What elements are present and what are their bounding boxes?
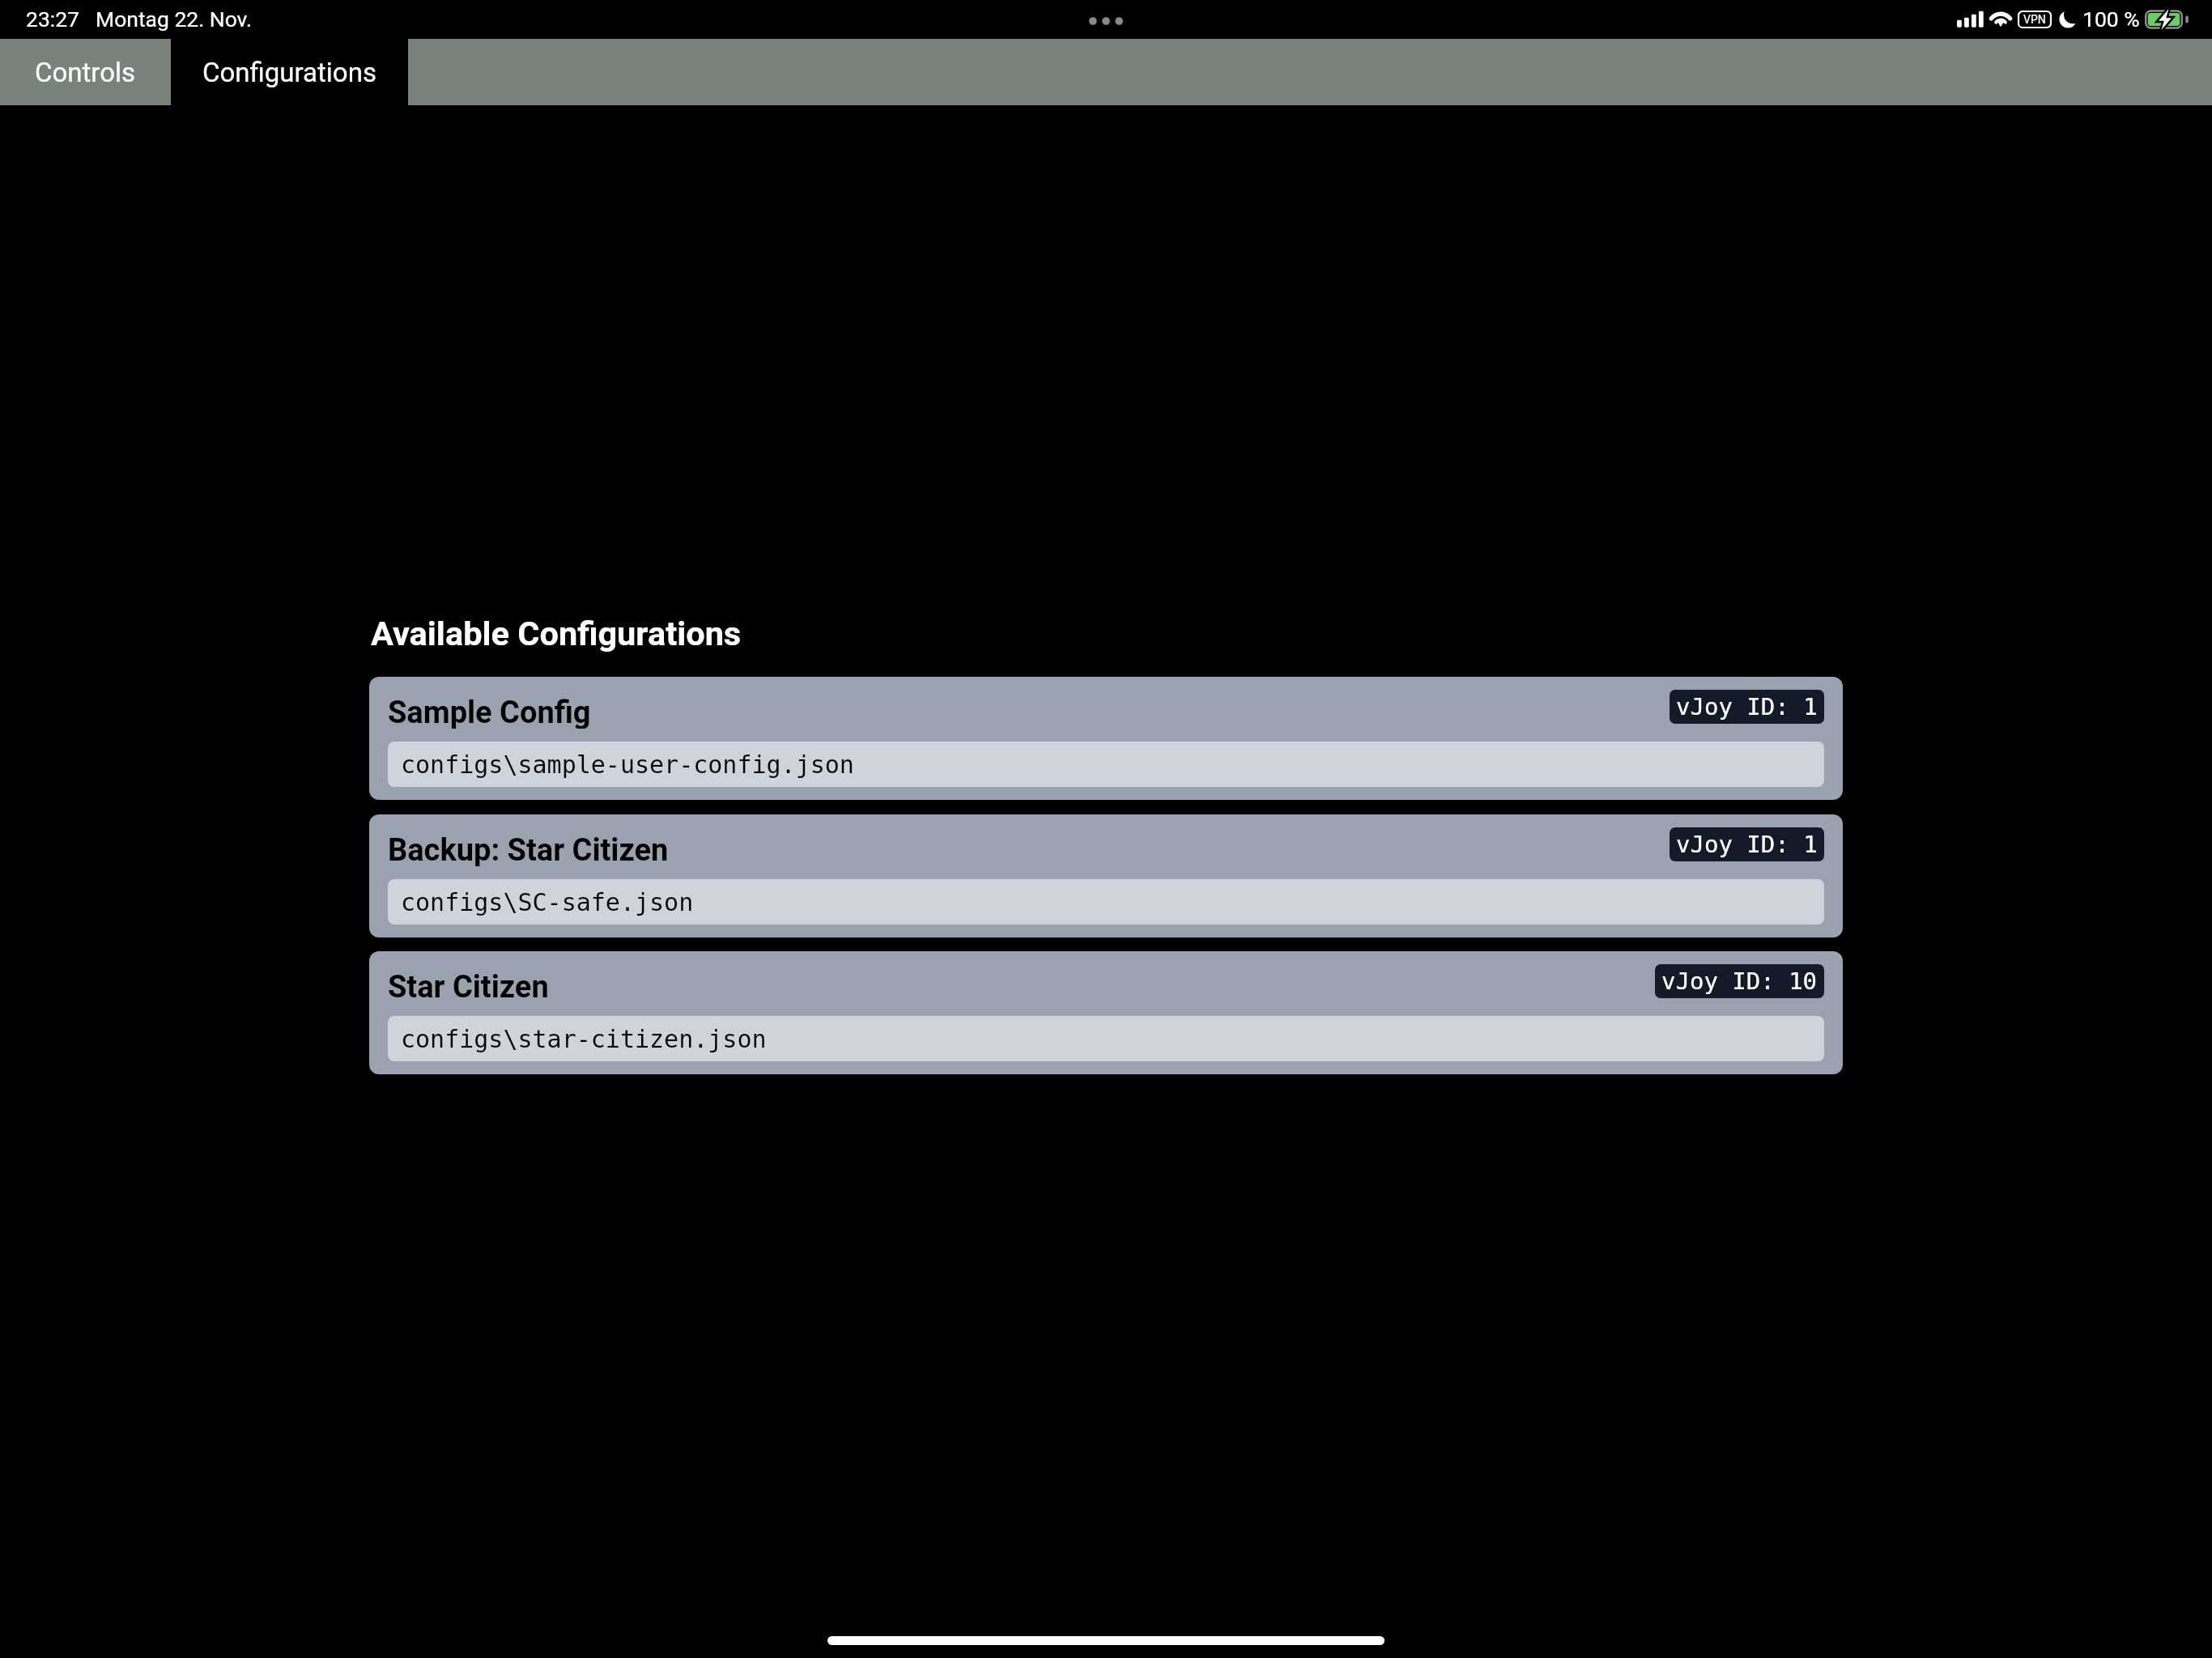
button[interactable]: Backup: Star Citizen [369, 814, 1843, 937]
other: VPN active [2018, 11, 2051, 28]
staticText: 23:27 [26, 6, 79, 32]
other: Mobile signal strength [1957, 10, 1984, 29]
other: Do not disturb [2059, 11, 2074, 28]
staticText: 100 % [2082, 6, 2140, 32]
staticText: configs\sample-user-config.json [401, 750, 854, 779]
other: Wi-Fi [1989, 10, 2012, 29]
staticText: configs\star-citizen.json [401, 1025, 767, 1053]
button[interactable]: Sample Config [369, 677, 1843, 800]
staticText: Sample Config [388, 695, 591, 729]
staticText: Montag 22. Nov. [96, 6, 253, 32]
staticText: vJoy ID: 1 [1676, 693, 1818, 721]
other: More [1083, 15, 1129, 28]
button[interactable]: Controls [0, 39, 171, 105]
other: Battery full, charging [2145, 9, 2188, 30]
button[interactable]: Star Citizen [369, 951, 1843, 1074]
staticText: vJoy ID: 10 [1661, 967, 1818, 995]
staticText: Backup: Star Citizen [388, 832, 669, 866]
staticText: configs\SC-safe.json [401, 888, 694, 916]
staticText: Controls [35, 57, 136, 88]
staticText: Available Configurations [371, 614, 742, 653]
staticText: VPN [2023, 13, 2046, 26]
staticText: Configurations [202, 57, 376, 88]
other: Home indicator [827, 1636, 1385, 1645]
staticText: Star Citizen [388, 969, 549, 1003]
button[interactable]: Configurations [171, 39, 408, 105]
staticText: vJoy ID: 1 [1676, 831, 1818, 858]
